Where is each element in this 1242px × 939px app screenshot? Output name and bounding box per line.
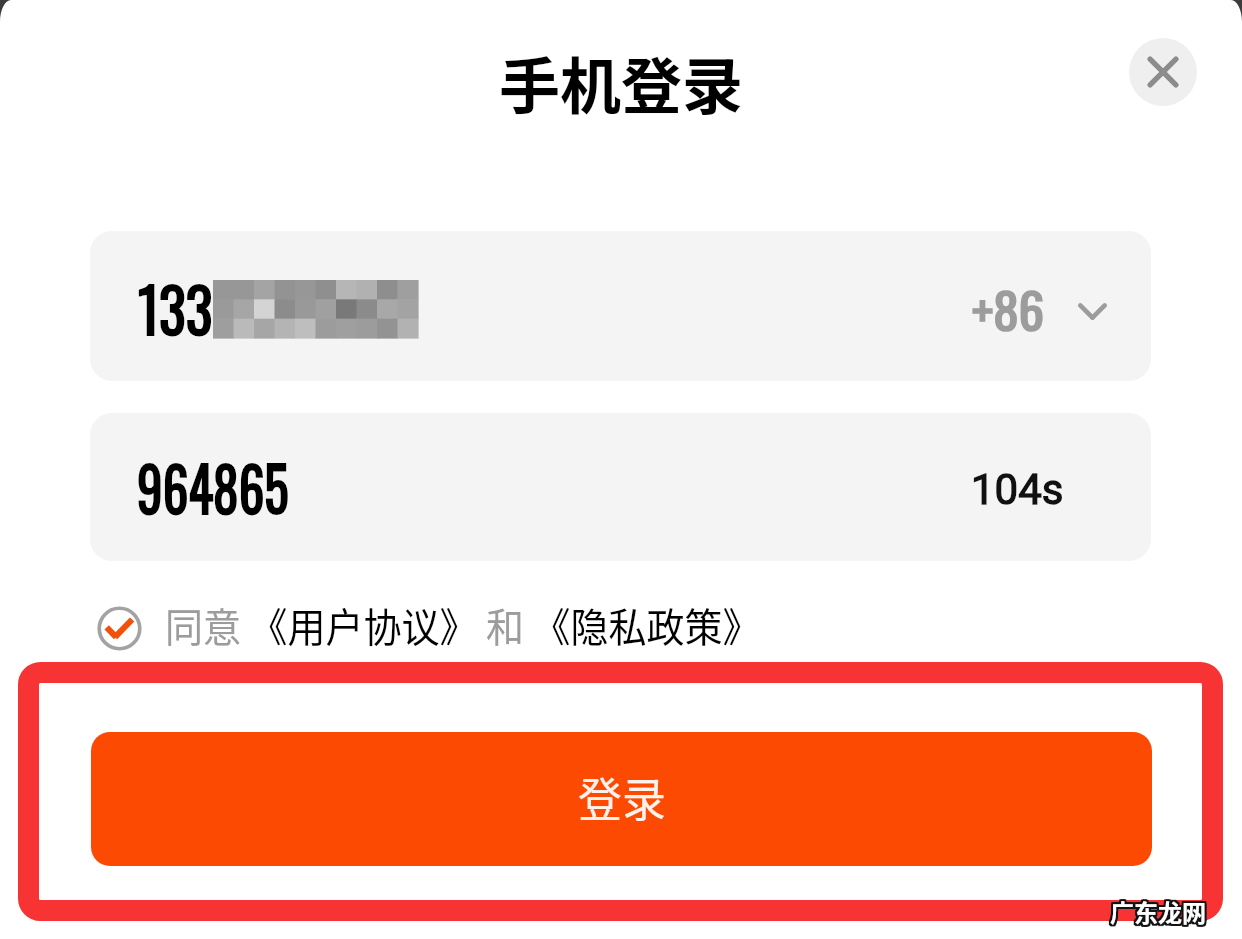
staticText: 广东龙网 xyxy=(1112,895,1208,930)
staticText: 广东龙网 xyxy=(1110,894,1206,929)
button[interactable]: Select country code xyxy=(1060,282,1122,344)
staticText: 广东龙网 xyxy=(1108,893,1204,928)
staticText: 广东龙网 xyxy=(1111,895,1207,930)
staticText: 广东龙网 xyxy=(1109,896,1205,931)
button[interactable]: Verification code xyxy=(90,413,1151,561)
staticText: 登录 xyxy=(578,763,666,830)
staticText: 广东龙网 xyxy=(1110,893,1206,928)
staticText: 广东龙网 xyxy=(1109,892,1205,927)
staticText: 广东龙网 xyxy=(1111,894,1207,929)
staticText: 广东龙网 xyxy=(1111,896,1207,931)
staticText: 广东龙网 xyxy=(1112,892,1208,927)
staticText: 广东龙网 xyxy=(1109,893,1205,928)
staticText: +86 xyxy=(972,273,1045,346)
staticText: 广东龙网 xyxy=(1110,896,1206,931)
button[interactable]: Close xyxy=(1129,38,1197,106)
staticText: 广东龙网 xyxy=(1108,892,1204,927)
staticText: 广东龙网 xyxy=(1112,893,1208,928)
staticText: 广东龙网 xyxy=(1108,895,1204,930)
staticText: 广东龙网 xyxy=(1111,892,1207,927)
staticText: 广东龙网 xyxy=(1110,895,1206,930)
staticText: 104s xyxy=(971,465,1064,514)
staticText: 133 xyxy=(138,261,213,353)
staticText: 964865 xyxy=(137,440,289,532)
staticText: 广东龙网 xyxy=(1111,893,1207,928)
button[interactable]: 同意 《用户协议》 和 《隐私政策》 xyxy=(90,598,760,658)
staticText: 手机登录 xyxy=(499,38,744,126)
staticText: 广东龙网 xyxy=(1108,896,1204,931)
staticText: 广东龙网 xyxy=(1112,896,1208,931)
staticText: 广东龙网 xyxy=(1110,892,1206,927)
staticText: 广东龙网 xyxy=(1109,895,1205,930)
button[interactable]: Phone number xyxy=(90,231,1151,381)
staticText: 广东龙网 xyxy=(1108,894,1204,929)
staticText: 同意 《用户协议》 和 《隐私政策》 xyxy=(165,596,761,654)
staticText: 广东龙网 xyxy=(1109,894,1205,929)
staticText: 广东龙网 xyxy=(1112,894,1208,929)
button[interactable]: 登录 xyxy=(91,732,1152,866)
